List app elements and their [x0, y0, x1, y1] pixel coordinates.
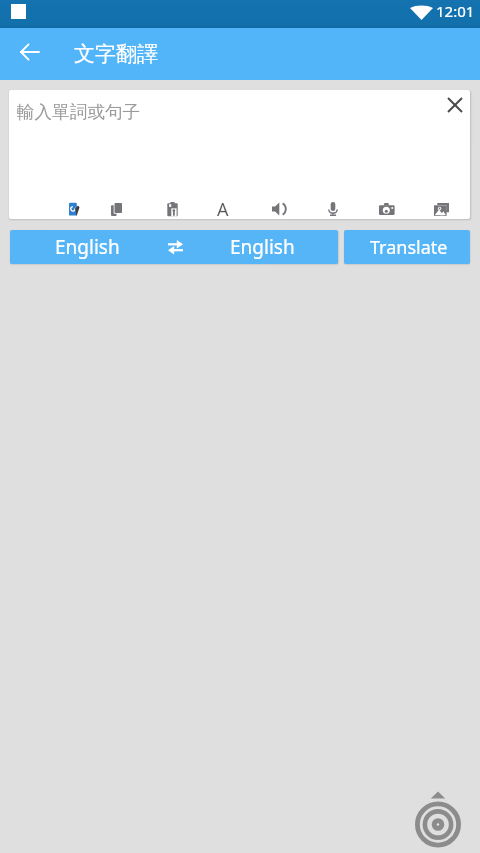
button[interactable]: Handwriting — [56, 195, 94, 219]
button[interactable]: Clear — [437, 90, 470, 119]
staticText: 輸入單詞或句子 — [17, 101, 141, 123]
button[interactable]: Copy — [97, 195, 135, 219]
button[interactable]: Assistive touch — [412, 788, 466, 850]
staticText: A — [217, 197, 229, 219]
button[interactable]: Back — [10, 33, 48, 71]
staticText: English — [230, 234, 295, 260]
button[interactable]: Translate — [344, 230, 470, 264]
button[interactable]: Paste — [153, 195, 191, 219]
button[interactable]: Swap languages — [165, 230, 185, 264]
staticText: English — [55, 234, 120, 260]
button[interactable]: Gallery — [422, 195, 460, 219]
staticText: 文字翻譯 — [74, 41, 158, 67]
button[interactable]: Camera — [368, 195, 406, 219]
button[interactable]: English — [186, 230, 338, 264]
button[interactable]: Text size — [204, 195, 242, 219]
button[interactable]: Speak — [260, 195, 298, 219]
button[interactable]: English — [10, 230, 165, 264]
staticText: 12:01 — [436, 1, 475, 21]
button[interactable]: Voice input — [314, 195, 352, 219]
staticText: Translate — [370, 235, 448, 260]
